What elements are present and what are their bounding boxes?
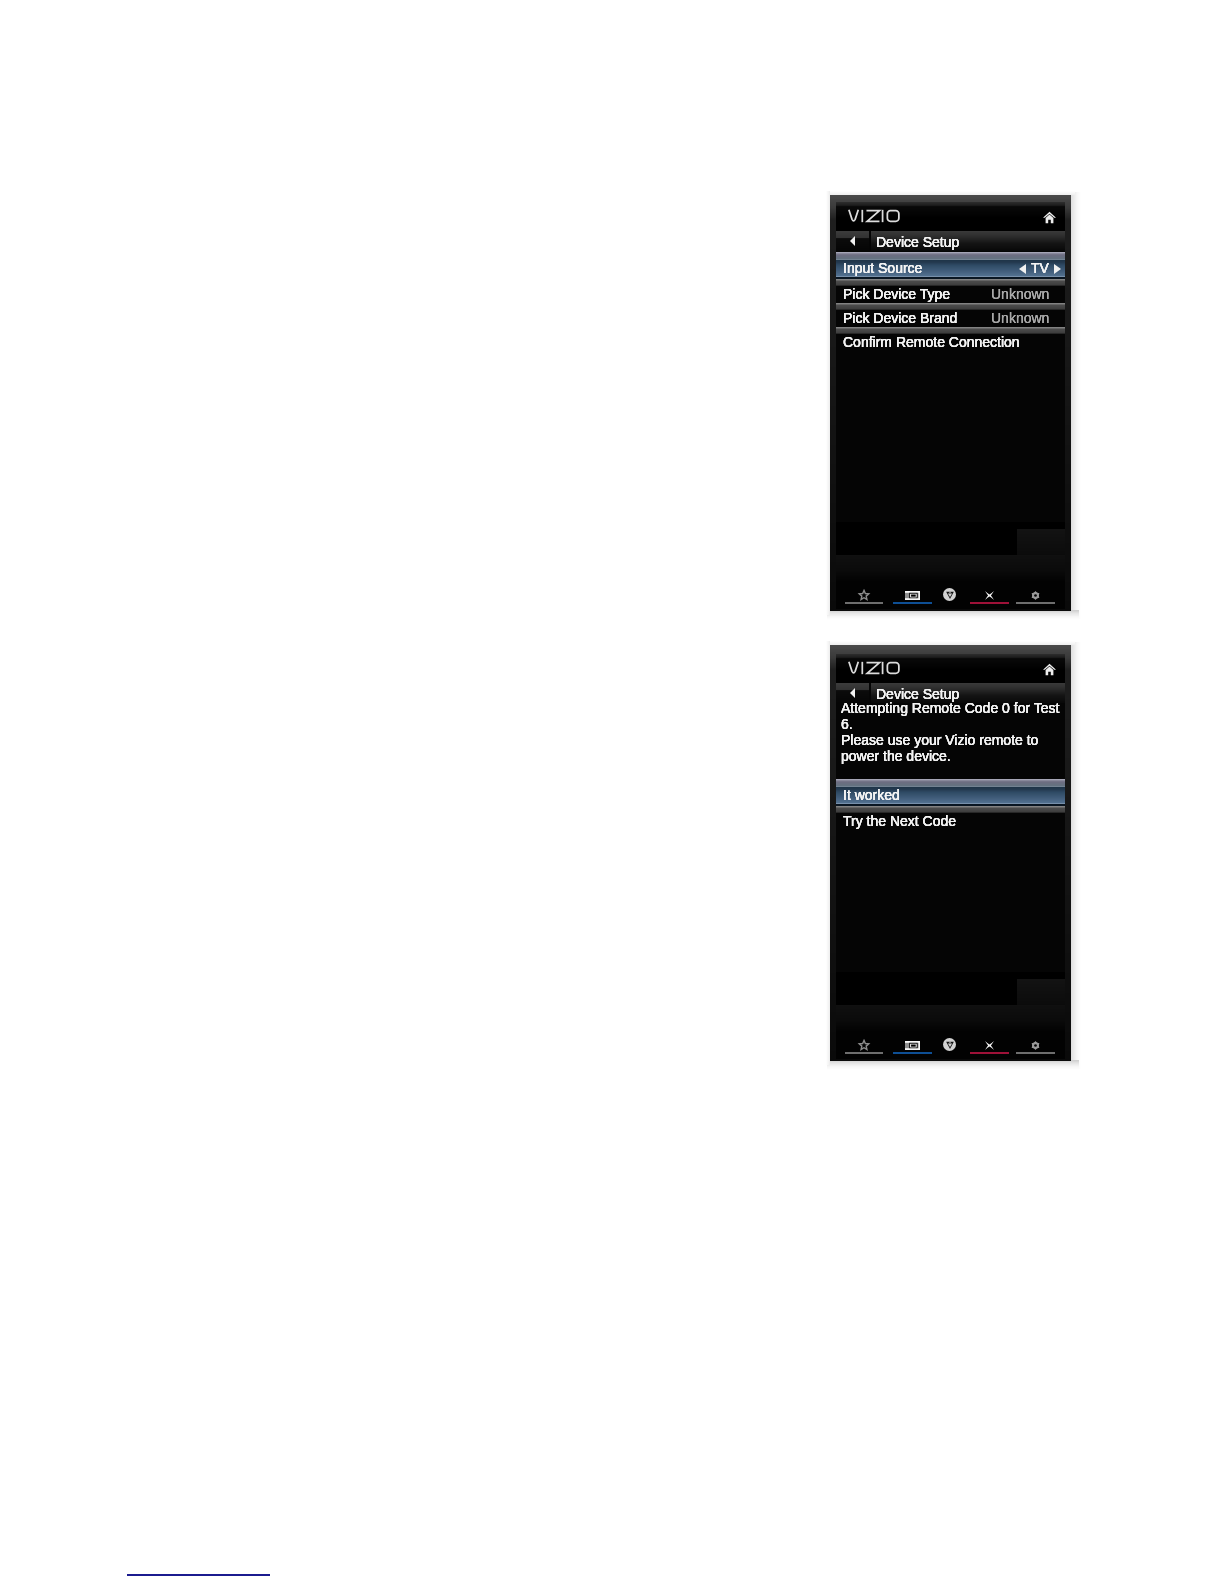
button[interactable]: Devices [893,582,932,609]
button[interactable]: Device Setup [871,683,1065,703]
button[interactable]: Favorites [845,1032,883,1059]
staticText: Pick Device Brand [843,310,958,326]
staticText: Input Source [843,260,923,276]
staticText: Please use your Vizio remote to power th… [841,732,1047,764]
staticText: Attempting Remote Code 0 for Test 6. [841,700,1063,732]
button[interactable]: Settings [1016,1032,1055,1059]
button[interactable]: Input Source [836,260,1065,277]
button[interactable]: Device Setup [871,231,1065,251]
staticText: Unknown [991,310,1050,326]
staticText: Device Setup [876,686,960,702]
staticText: Pick Device Type [843,286,951,302]
staticText: Unknown [991,286,1050,302]
button[interactable]: Back [836,683,869,703]
staticText: Try the Next Code [843,813,957,829]
staticText: Pick Device Type [843,286,951,302]
button[interactable]: Try the Next Code [836,813,1065,830]
button[interactable]: Home [1040,660,1058,678]
button[interactable]: Confirm Remote Connection [836,334,1065,351]
staticText: TV [1031,260,1049,276]
staticText: Device Setup [876,234,960,250]
button[interactable]: Disconnect [970,1032,1009,1059]
staticText: It worked [843,787,900,803]
button[interactable]: Home [1040,208,1058,226]
staticText: Attempting Remote Code 0 for Test 6. [841,700,1063,732]
button[interactable]: Settings [1016,582,1055,609]
button[interactable]: Devices [893,1032,932,1059]
staticText: It worked [843,787,900,803]
staticText: Confirm Remote Connection [843,334,1020,350]
button[interactable]: Vizio home [938,1033,960,1055]
staticText: Device Setup [876,234,960,250]
staticText: Please use your Vizio remote to power th… [841,732,1047,764]
staticText: Pick Device Brand [843,310,958,326]
button[interactable]: Back [836,231,869,251]
staticText: Confirm Remote Connection [843,334,1020,350]
staticText: Input Source [843,260,923,276]
button[interactable]: It worked [836,787,1065,804]
staticText: Unknown [991,310,1050,326]
button[interactable]: Pick Device Type [836,286,1065,303]
button[interactable]: Vizio home [938,583,960,605]
button[interactable]: Favorites [845,582,883,609]
button[interactable]: Pick Device Brand [836,310,1065,327]
staticText: TV [1031,260,1049,276]
staticText: Unknown [991,286,1050,302]
staticText: Try the Next Code [843,813,957,829]
staticText: Device Setup [876,686,960,702]
button[interactable]: Disconnect [970,582,1009,609]
